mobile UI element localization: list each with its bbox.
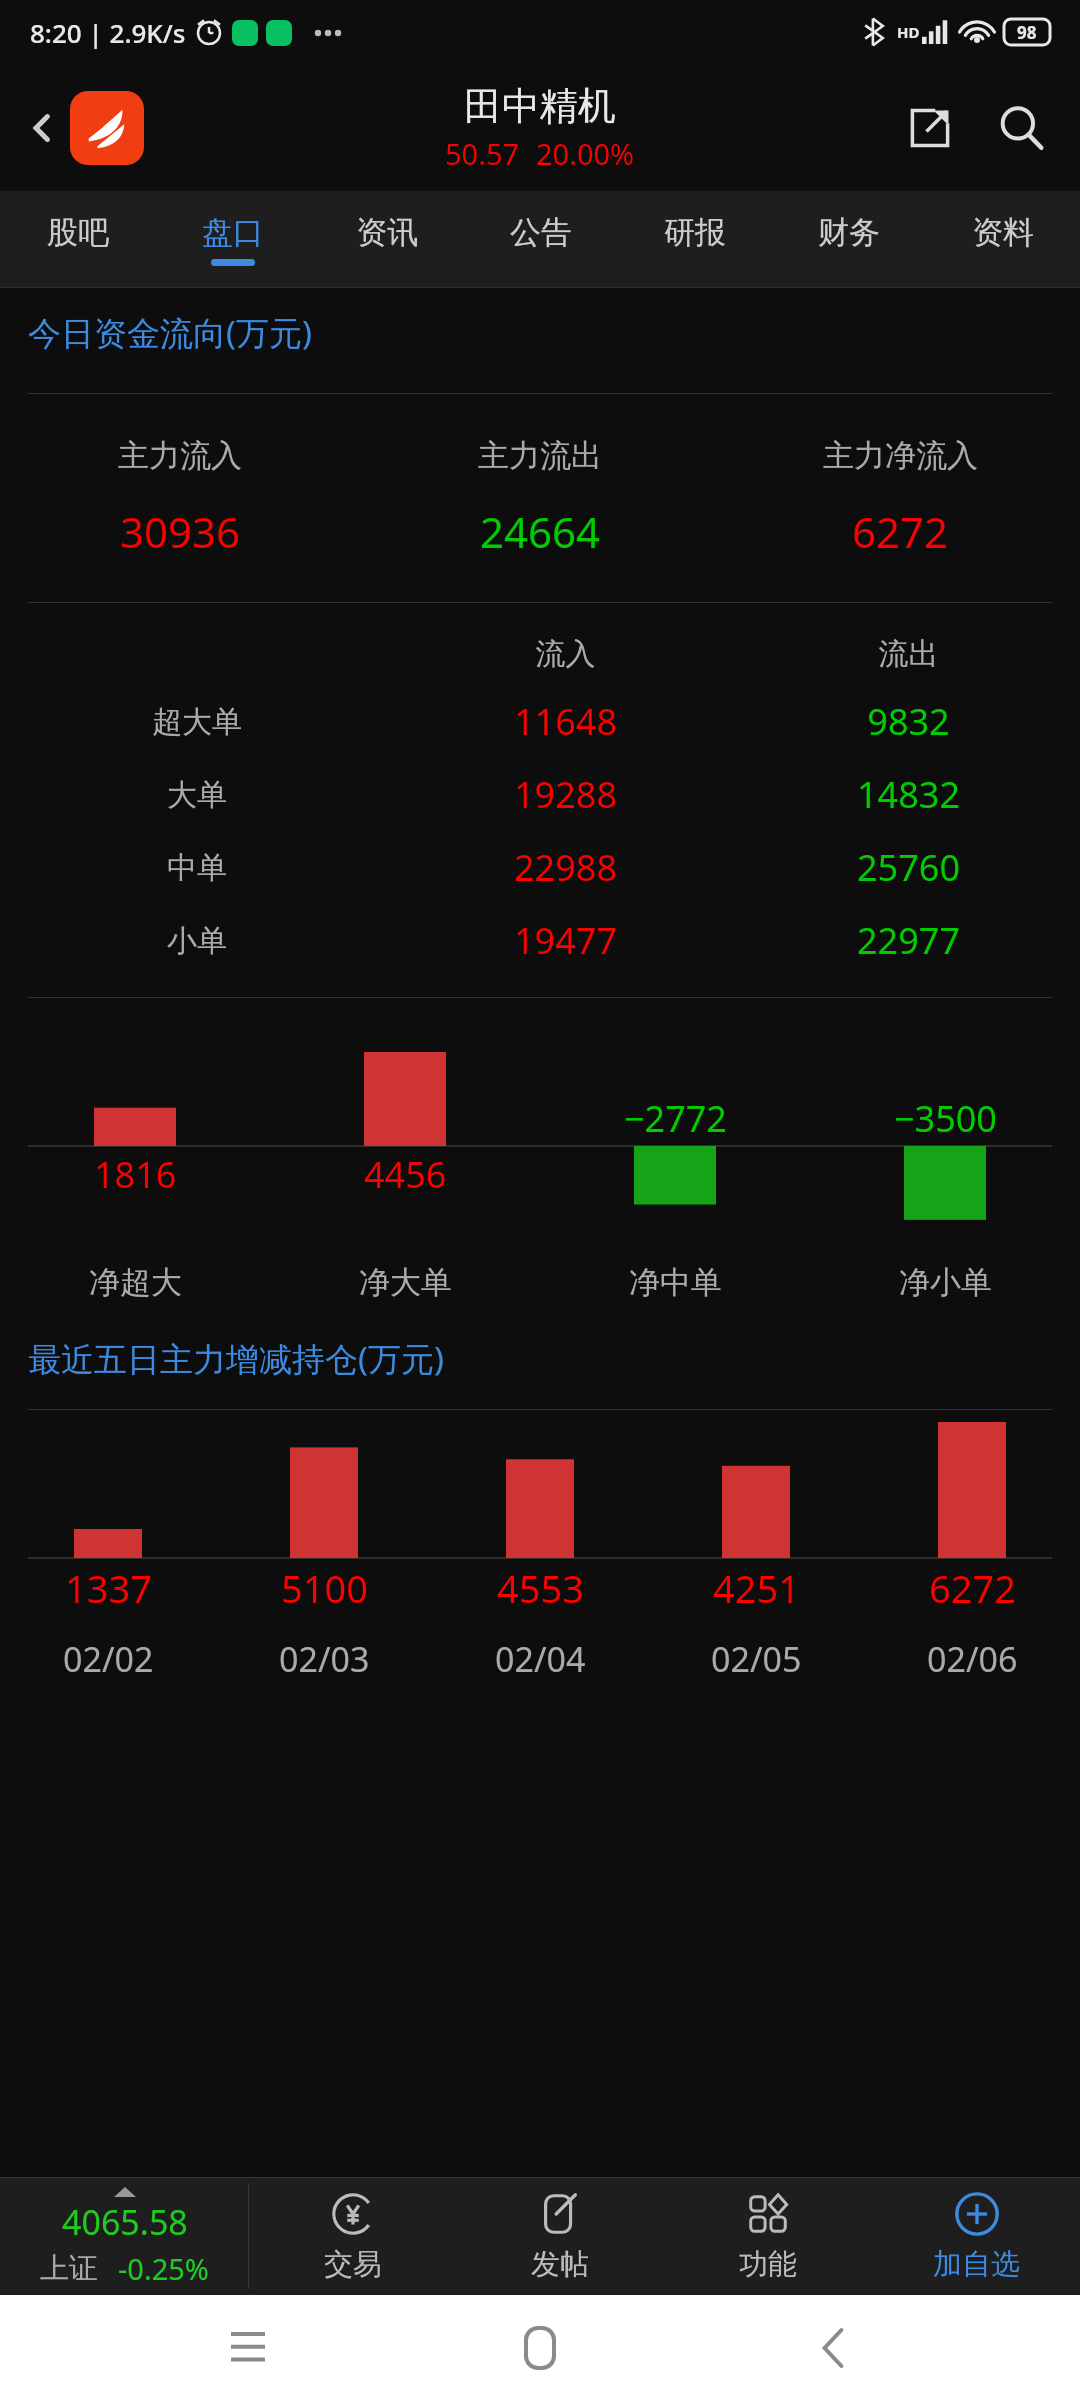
button[interactable]: Back: [12, 98, 72, 158]
staticText: 02/02: [63, 1636, 154, 1682]
staticText: HD: [897, 22, 920, 42]
staticText: 净中单: [629, 1263, 722, 1302]
button[interactable]: Search: [984, 90, 1060, 166]
staticText: 19477: [394, 916, 737, 965]
staticText: 田中精机: [464, 82, 616, 130]
staticText: 8:20 | 2.9K/s: [30, 15, 186, 50]
staticText: 功能: [739, 2246, 797, 2283]
button[interactable]: Home: [495, 2303, 585, 2393]
staticText: 最近五日主力增减持仓(万元): [28, 1336, 444, 1381]
button[interactable]: 4065.58: [0, 2177, 248, 2295]
staticText: 22988: [394, 843, 737, 892]
staticText: 02/04: [495, 1636, 586, 1682]
button[interactable]: 功能: [664, 2177, 872, 2295]
staticText: 资讯: [356, 213, 418, 252]
staticText: 公告: [510, 213, 572, 252]
button[interactable]: 公告: [464, 191, 618, 288]
button[interactable]: 资料: [926, 191, 1080, 288]
staticText: 30936: [120, 503, 241, 560]
button[interactable]: 股吧: [0, 191, 155, 288]
staticText: −2772: [624, 1094, 727, 1143]
button[interactable]: 研报: [618, 191, 772, 288]
staticText: 净超大: [89, 1263, 182, 1302]
staticText: 25760: [737, 843, 1080, 892]
staticText: 大单: [0, 776, 394, 814]
staticText: 19288: [394, 770, 737, 819]
staticText: 发帖: [531, 2246, 589, 2283]
staticText: 14832: [737, 770, 1080, 819]
staticText: 净小单: [899, 1263, 992, 1302]
staticText: 1337: [65, 1562, 152, 1614]
staticText: 02/05: [711, 1636, 802, 1682]
button[interactable]: 盘口: [155, 191, 310, 288]
staticText: 流出: [737, 635, 1080, 673]
staticText: 盘口: [202, 213, 264, 252]
staticText: 资料: [972, 213, 1034, 252]
staticText: 02/06: [927, 1636, 1018, 1682]
staticText: 5100: [281, 1562, 368, 1614]
staticText: 22977: [737, 916, 1080, 965]
staticText: 交易: [324, 2246, 382, 2283]
staticText: 1816: [94, 1150, 177, 1199]
staticText: 20.00%: [536, 134, 635, 173]
staticText: 98: [1017, 21, 1037, 44]
button[interactable]: 加自选: [872, 2177, 1080, 2295]
staticText: 中单: [0, 849, 394, 887]
staticText: 50.57: [445, 134, 520, 173]
staticText: 加自选: [933, 2246, 1020, 2283]
button[interactable]: 发帖: [456, 2177, 664, 2295]
button[interactable]: 交易: [249, 2177, 456, 2295]
button[interactable]: App logo: [70, 91, 144, 165]
button[interactable]: 资讯: [310, 191, 464, 288]
staticText: 6272: [852, 503, 949, 560]
staticText: 4456: [364, 1150, 447, 1199]
staticText: 4553: [497, 1562, 584, 1614]
staticText: 4251: [713, 1562, 800, 1614]
staticText: 4065.58: [62, 2199, 188, 2245]
button[interactable]: Recents: [203, 2303, 293, 2393]
staticText: 主力流出: [478, 436, 602, 475]
staticText: 24664: [480, 503, 601, 560]
staticText: 股吧: [47, 213, 109, 252]
staticText: 超大单: [0, 703, 394, 741]
staticText: 今日资金流向(万元): [28, 310, 312, 355]
staticText: -0.25%: [118, 2249, 209, 2288]
button[interactable]: 财务: [772, 191, 926, 288]
staticText: 9832: [737, 697, 1080, 746]
staticText: 研报: [664, 213, 726, 252]
staticText: 02/03: [279, 1636, 370, 1682]
button[interactable]: Back: [788, 2303, 878, 2393]
staticText: 主力净流入: [823, 436, 978, 475]
staticText: 11648: [394, 697, 737, 746]
staticText: 净大单: [359, 1263, 452, 1302]
button[interactable]: Share: [892, 90, 968, 166]
staticText: 小单: [0, 922, 394, 960]
staticText: 上证: [40, 2250, 98, 2287]
staticText: −3500: [894, 1094, 997, 1143]
staticText: 财务: [818, 213, 880, 252]
staticText: 流入: [394, 635, 737, 673]
staticText: 6272: [929, 1562, 1016, 1614]
staticText: 主力流入: [118, 436, 242, 475]
